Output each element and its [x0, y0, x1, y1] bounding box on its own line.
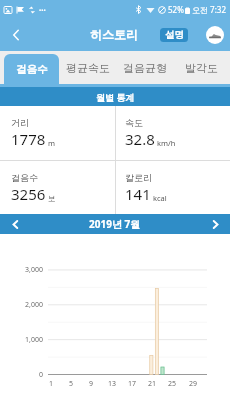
staticText: 3256: [11, 184, 46, 204]
staticText: 평균속도: [66, 61, 110, 75]
staticText: 32.8: [125, 129, 155, 149]
button[interactable]: 설명: [160, 28, 188, 42]
staticText: 13: [104, 379, 120, 389]
staticText: 발각도: [185, 61, 218, 75]
staticText: 히스토리: [90, 27, 138, 42]
button[interactable]: Next month: [200, 214, 230, 234]
button[interactable]: 평균속도: [59, 51, 116, 84]
button[interactable]: Back: [0, 18, 32, 51]
staticText: 21: [144, 379, 160, 389]
staticText: 설명: [165, 29, 184, 41]
staticText: 월별 통계: [96, 91, 135, 103]
staticText: 17: [124, 379, 140, 389]
staticText: 2,000: [16, 300, 43, 310]
staticText: 1: [43, 379, 59, 389]
staticText: kcal: [153, 193, 167, 203]
staticText: 속도: [125, 117, 143, 128]
staticText: 5: [63, 379, 79, 389]
staticText: 1,000: [16, 335, 43, 345]
button[interactable]: 발각도: [173, 51, 230, 84]
staticText: 오전 7:32: [192, 4, 226, 15]
staticText: 거리: [11, 117, 29, 128]
button[interactable]: 걸음수: [0, 161, 115, 214]
staticText: 52%: [168, 4, 184, 15]
staticText: ···: [39, 4, 46, 15]
staticText: 0: [16, 370, 43, 380]
button[interactable]: 칼로리: [116, 161, 230, 214]
staticText: m: [48, 138, 56, 148]
button[interactable]: 거리: [0, 106, 115, 160]
staticText: 9: [83, 379, 99, 389]
button[interactable]: 걸음수: [4, 54, 59, 84]
staticText: 25: [164, 379, 180, 389]
button[interactable]: Profile: [206, 26, 224, 44]
staticText: km/h: [157, 138, 176, 148]
staticText: 1778: [11, 129, 46, 149]
staticText: 141: [125, 184, 151, 204]
staticText: 칼로리: [125, 172, 152, 183]
staticText: 보: [48, 194, 56, 203]
staticText: 걸음균형: [123, 61, 167, 75]
staticText: 2019년 7월: [89, 217, 141, 231]
button[interactable]: Previous month: [0, 214, 30, 234]
button[interactable]: 속도: [116, 106, 230, 160]
staticText: 걸음수: [11, 172, 38, 183]
staticText: 29: [185, 379, 201, 389]
staticText: 걸음수: [16, 63, 48, 76]
button[interactable]: 걸음균형: [116, 51, 173, 84]
staticText: 3,000: [16, 265, 43, 275]
